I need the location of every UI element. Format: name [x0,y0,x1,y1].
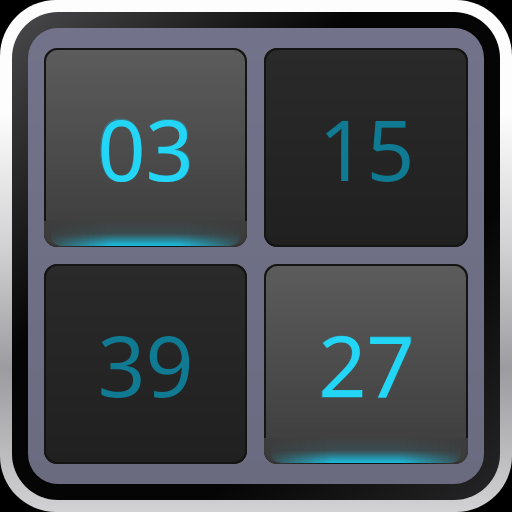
staticText: 27 [318,307,415,421]
button[interactable]: Value 03 [44,48,247,247]
staticText: 15 [318,91,415,205]
staticText: 03 [96,89,195,206]
button[interactable]: Value 27 [264,264,468,464]
staticText: 27 [317,306,416,423]
button[interactable]: Value 39 [44,264,247,464]
button[interactable]: Value 15 [264,48,468,247]
staticText: 03 [97,91,194,205]
staticText: 39 [97,307,194,421]
